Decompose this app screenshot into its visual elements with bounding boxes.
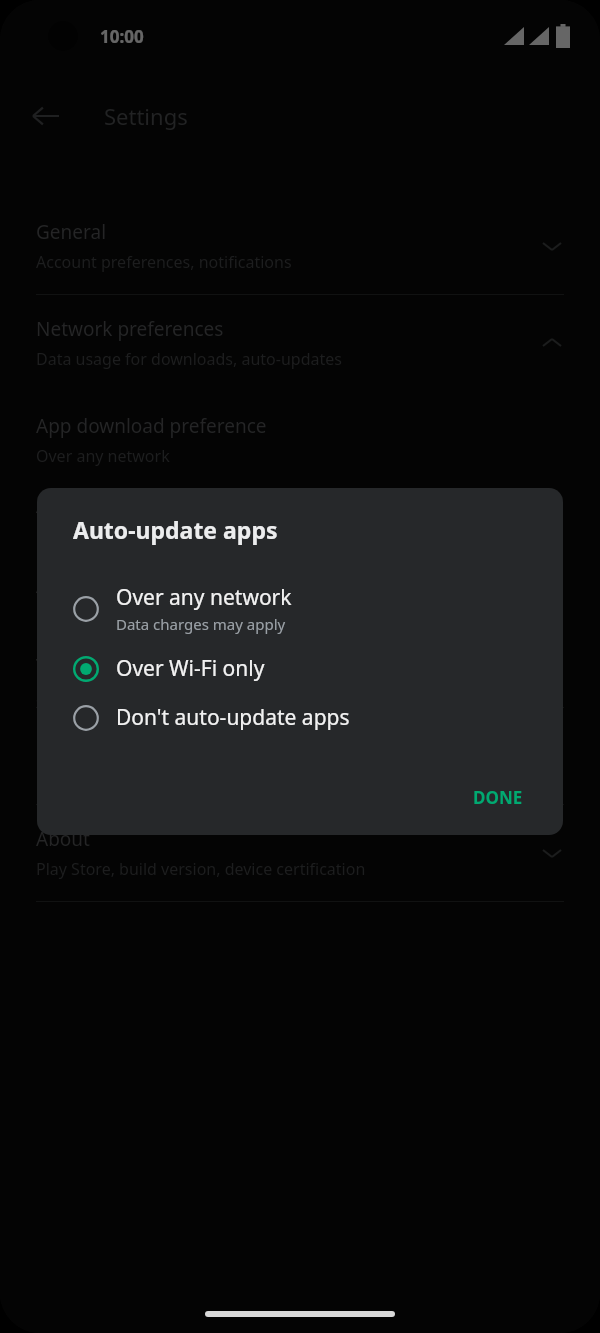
staticText: General [36,219,107,245]
staticText: Over any network [116,583,292,612]
button[interactable]: Network preferences [0,295,600,391]
staticText: Settings [104,101,188,131]
staticText: Over Wi-Fi only [36,605,150,627]
button[interactable]: App download preference [0,413,600,467]
staticText: DONE [473,786,523,809]
staticText: 10:00 [100,25,144,48]
staticText: Family [36,729,94,755]
staticText: Auto-update apps [73,514,278,545]
button[interactable]: Theme [0,653,600,707]
staticText: System default [36,685,148,707]
button[interactable]: Over Wi-Fi only [37,644,563,693]
staticText: Theme [36,653,98,679]
staticText: Data charges may apply [116,614,286,634]
button[interactable]: DONE [459,776,537,819]
staticText: Account preferences, notifications [36,251,292,273]
staticText: App download preference [36,413,267,439]
staticText: About [36,826,90,852]
staticText: Don't auto-update apps [116,703,350,732]
button[interactable]: Over any network [37,573,563,644]
button[interactable]: About [0,805,600,901]
staticText: Auto-play videos [36,573,184,599]
staticText: Over Wi-Fi only [116,654,265,683]
staticText: Network preferences [36,316,224,342]
staticText: Over any network [36,445,170,467]
button[interactable]: Back [22,92,70,140]
button[interactable]: Family [0,708,600,804]
staticText: Auto-update apps [36,493,196,519]
staticText: Play Store, build version, device certif… [36,858,366,880]
button[interactable]: Auto-play videos [0,573,600,627]
button[interactable]: Don't auto-update apps [37,693,563,742]
staticText: Over Wi-Fi only [36,525,150,547]
staticText: Data usage for downloads, auto-updates [36,348,342,370]
button[interactable]: Auto-update apps [0,493,600,547]
button[interactable]: General [0,198,600,294]
